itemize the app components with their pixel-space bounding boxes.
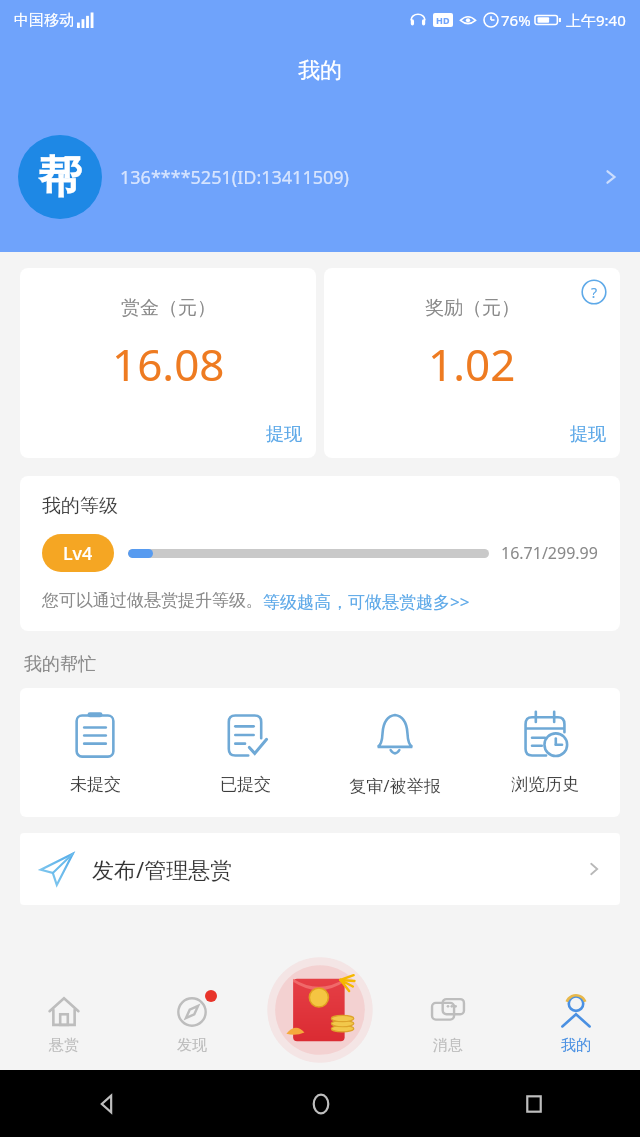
staticText: 16.08 (112, 334, 225, 394)
button[interactable]: 提现 (570, 423, 606, 446)
staticText: 奖励（元） (425, 296, 520, 320)
button[interactable]: Back (0, 1070, 214, 1137)
staticText: Lv4 (63, 541, 93, 566)
button[interactable]: 浏览历史 (470, 706, 620, 797)
staticText: 1.02 (428, 334, 516, 394)
staticText: 发现 (177, 1036, 207, 1055)
button[interactable]: 赏金（元） (20, 268, 316, 458)
staticText: 我的 (561, 1036, 591, 1055)
staticText: HD (436, 14, 450, 26)
button[interactable]: 帮 (0, 102, 640, 252)
staticText: 赏金（元） (121, 296, 216, 320)
staticText: 16.71/299.99 (501, 542, 598, 564)
staticText: 76% (501, 10, 531, 30)
button[interactable]: 我的等级 (20, 476, 620, 631)
button[interactable]: 帮助 (324, 268, 620, 458)
staticText: 您可以通过做悬赏提升等级。 (42, 590, 263, 611)
staticText: 复审/被举报 (349, 774, 441, 797)
button[interactable]: 师徒 (264, 964, 376, 1056)
button[interactable]: 复审/被举报 (320, 706, 470, 799)
staticText: 中国移动 (14, 11, 74, 30)
staticText: 消息 (433, 1036, 463, 1055)
staticText: 未提交 (70, 774, 121, 795)
staticText: 提现 (570, 423, 606, 446)
staticText: 上午9:40 (566, 10, 626, 30)
staticText: 我的等级 (42, 494, 118, 518)
staticText: 已提交 (220, 774, 271, 795)
staticText: ? (591, 283, 598, 302)
staticText: 等级越高，可做悬赏越多>> (263, 590, 470, 613)
button[interactable]: 发布/管理悬赏 (20, 833, 620, 905)
staticText: 我的帮忙 (24, 653, 96, 676)
button[interactable]: 我的 (512, 978, 640, 1070)
button[interactable]: 帮助 (580, 278, 608, 306)
staticText: 136****5251(ID:13411509) (120, 165, 349, 190)
staticText: 我的 (298, 57, 342, 85)
staticText: 发布/管理悬赏 (92, 854, 233, 884)
button[interactable]: 未提交 (20, 706, 170, 797)
button[interactable]: 已提交 (170, 706, 320, 797)
button[interactable]: 消息 (384, 978, 512, 1070)
button[interactable]: 发现 (128, 978, 256, 1070)
staticText: 浏览历史 (511, 774, 579, 795)
button[interactable]: Recents (427, 1070, 640, 1137)
button[interactable]: 提现 (266, 423, 302, 446)
staticText: 帮 (38, 150, 82, 205)
staticText: 悬赏 (49, 1036, 79, 1055)
button[interactable]: Home (214, 1070, 427, 1137)
staticText: 提现 (266, 423, 302, 446)
button[interactable]: 悬赏 (0, 978, 128, 1070)
